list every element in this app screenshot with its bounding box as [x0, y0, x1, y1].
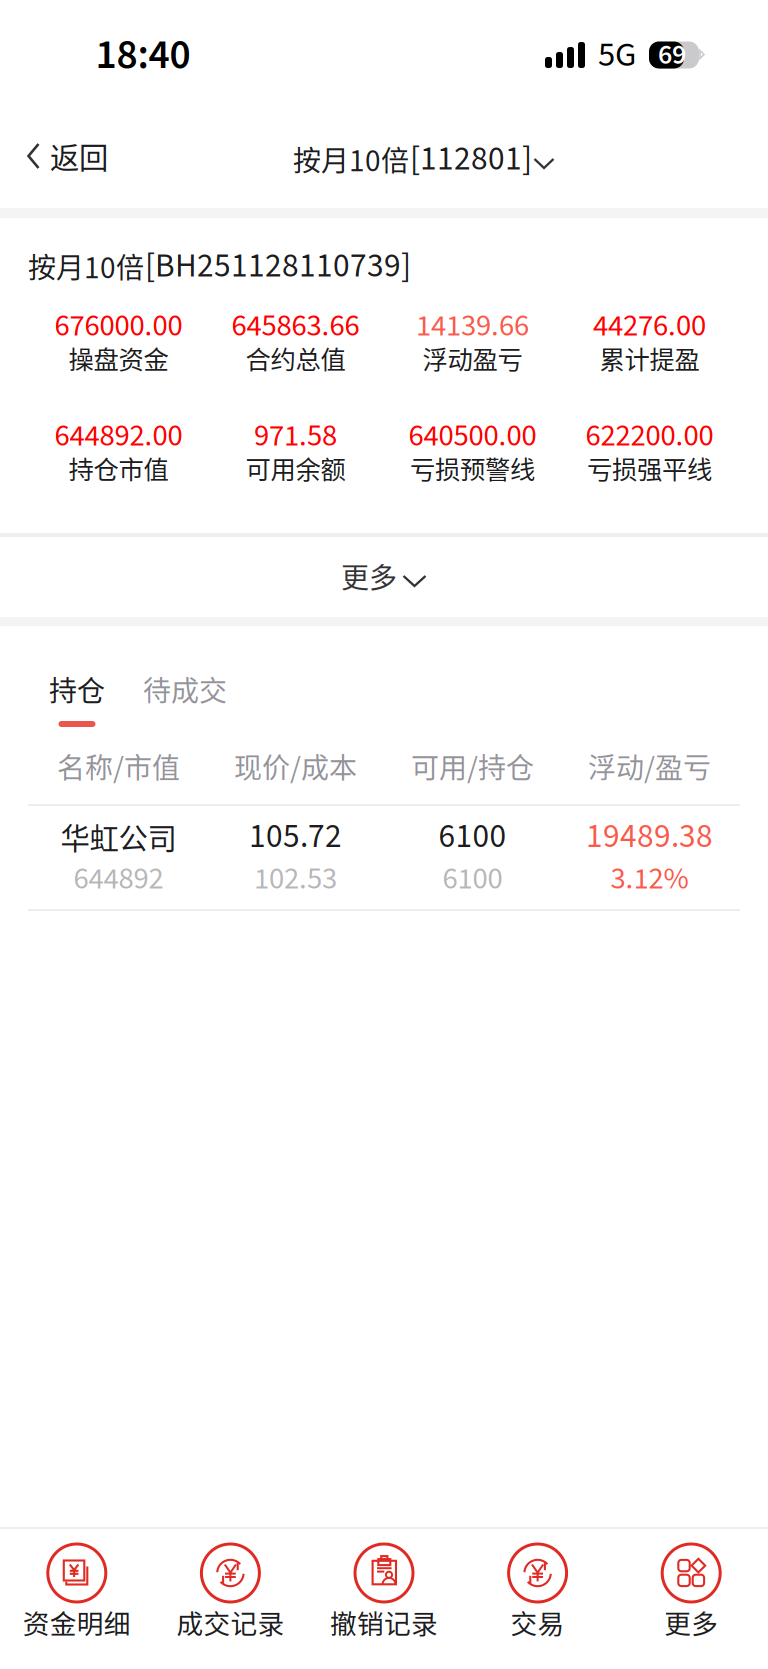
- staticText: 可用/持仓: [411, 746, 534, 786]
- staticText: 6100: [438, 813, 506, 860]
- staticText: 14139.66: [416, 304, 529, 348]
- button[interactable]: 返回: [0, 129, 124, 189]
- staticText: 3.12%: [610, 857, 688, 901]
- button[interactable]: 成交记录: [154, 1529, 307, 1669]
- staticText: 持仓市值: [68, 450, 168, 486]
- button[interactable]: 按月10倍: [243, 129, 525, 189]
- staticText: 亏损强平线: [587, 450, 712, 486]
- staticText: [BH251128110739]: [145, 242, 411, 290]
- staticText: 名称/市值: [57, 746, 180, 786]
- staticText: 按月10倍: [293, 139, 409, 179]
- staticText: 现价/成本: [234, 746, 357, 786]
- button[interactable]: 持仓: [0, 626, 127, 727]
- staticText: 合约总值: [245, 340, 345, 376]
- staticText: 操盘资金: [68, 340, 168, 376]
- staticText: 资金明细: [23, 1603, 131, 1641]
- button[interactable]: 待成交: [127, 626, 247, 704]
- staticText: 待成交: [143, 669, 227, 709]
- button[interactable]: 华虹公司: [0, 806, 768, 909]
- staticText: 6100: [442, 857, 502, 901]
- staticText: 华虹公司: [60, 815, 176, 858]
- staticText: 971.58: [254, 414, 337, 458]
- staticText: 622200.00: [585, 414, 713, 458]
- staticText: [112801]: [410, 135, 532, 183]
- staticText: 可用余额: [245, 450, 345, 486]
- staticText: 18:40: [95, 26, 190, 84]
- staticText: 按月10倍: [28, 246, 144, 286]
- staticText: 浮动/盈亏: [588, 746, 711, 786]
- staticText: 返回: [50, 135, 108, 177]
- staticText: 102.53: [254, 857, 337, 901]
- staticText: 撤销记录: [330, 1603, 438, 1641]
- button[interactable]: 资金明细: [0, 1529, 154, 1669]
- button[interactable]: 交易: [461, 1529, 614, 1669]
- staticText: 644892.00: [54, 414, 182, 458]
- staticText: 浮动盈亏: [422, 340, 522, 376]
- staticText: 44276.00: [593, 304, 706, 348]
- staticText: 640500.00: [408, 414, 536, 458]
- staticText: 更多: [341, 556, 397, 596]
- staticText: 645863.66: [231, 304, 359, 348]
- button[interactable]: 更多: [0, 537, 768, 617]
- staticText: 69: [658, 35, 686, 75]
- staticText: 累计提盈: [599, 340, 699, 376]
- staticText: 19489.38: [586, 813, 713, 860]
- button[interactable]: 撤销记录: [307, 1529, 461, 1669]
- staticText: 644892: [73, 857, 163, 901]
- staticText: 更多: [664, 1603, 718, 1641]
- staticText: 交易: [511, 1603, 565, 1641]
- staticText: 成交记录: [176, 1603, 284, 1641]
- staticText: 亏损预警线: [410, 450, 535, 486]
- staticText: 105.72: [249, 813, 342, 860]
- button[interactable]: 更多: [614, 1529, 768, 1669]
- staticText: 5G: [598, 30, 636, 80]
- staticText: 持仓: [49, 669, 105, 709]
- staticText: 676000.00: [54, 304, 182, 348]
